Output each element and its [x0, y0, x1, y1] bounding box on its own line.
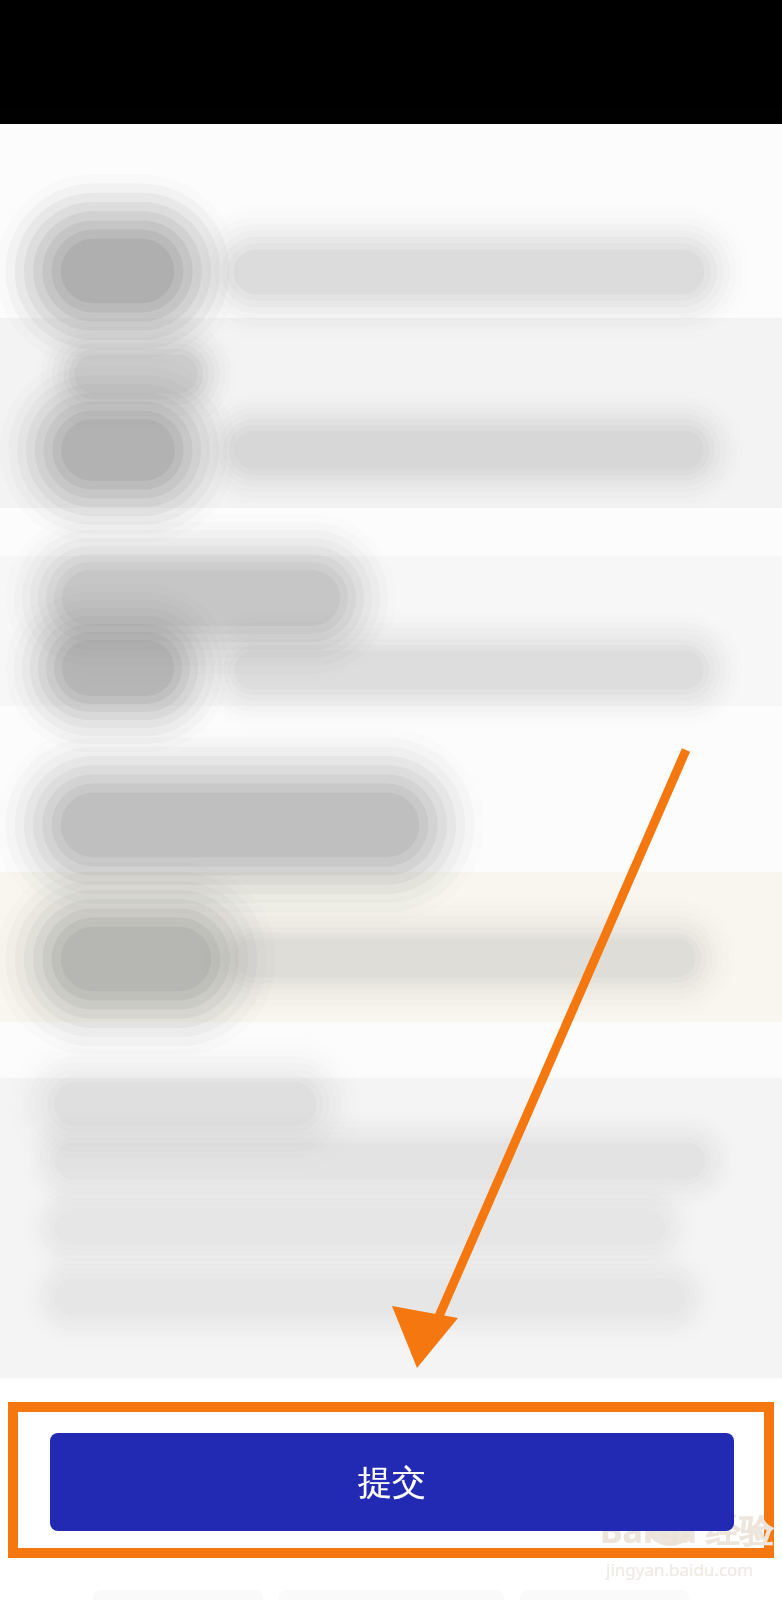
staticText: 提交 [358, 1461, 426, 1504]
button[interactable]: 提交 [50, 1433, 734, 1531]
staticText: Baidu 经验 [600, 1507, 774, 1553]
staticText: jingyan.baidu.com [606, 1558, 754, 1581]
